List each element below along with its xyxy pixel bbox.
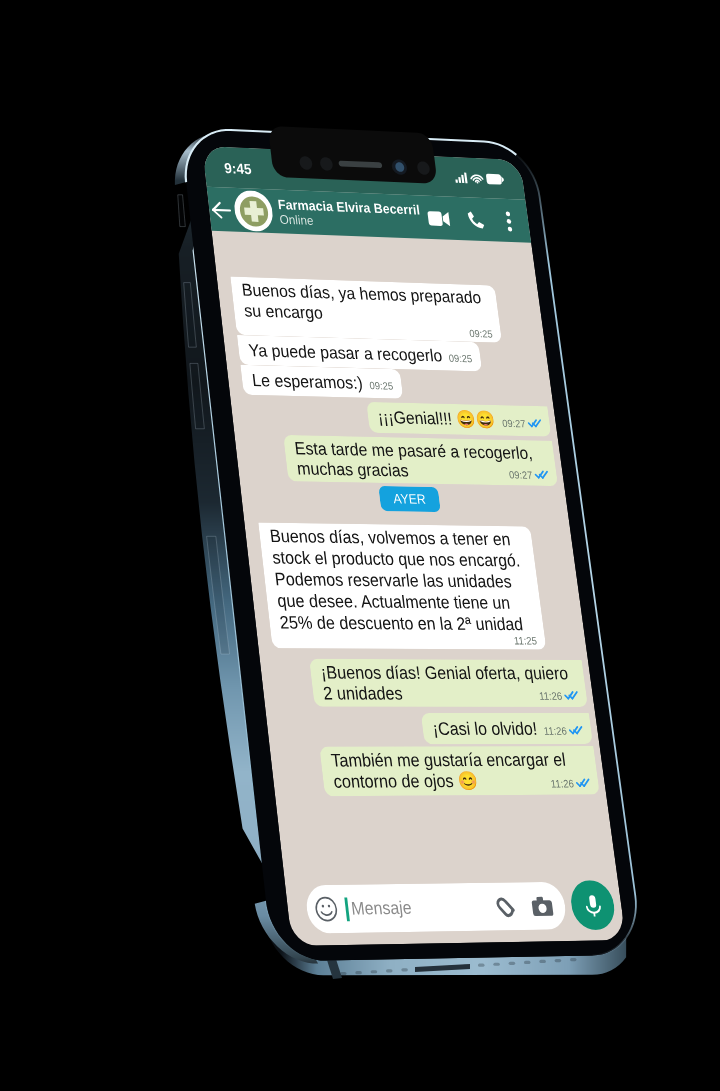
button[interactable]: Mensaje	[20, 724, 298, 769]
staticText: 09:25	[248, 203, 275, 215]
button[interactable]: Voice message	[305, 723, 352, 770]
button[interactable]: Buenos días, ya hemos preparado su encar…	[15, 133, 311, 192]
button[interactable]: ¡Casi lo olvido!	[167, 562, 353, 592]
button[interactable]: Attach	[221, 732, 243, 762]
staticText: ¡Buenos días! Genial oferta, quiero	[64, 513, 336, 533]
button[interactable]: Camera	[261, 732, 285, 762]
staticText: 09:25	[275, 177, 302, 189]
staticText: 09:27	[299, 320, 326, 332]
staticText: Ya puede pasar a recogerlo	[26, 197, 241, 217]
staticText: 11:26	[300, 539, 326, 551]
button[interactable]: Ya puede pasar a recogerlo	[15, 192, 284, 222]
staticText: ¡¡¡Genial!!! 😄😄	[160, 261, 292, 282]
button[interactable]: Le esperamos:)	[15, 222, 191, 252]
button[interactable]: ¡Buenos días! Genial oferta, quiero	[53, 510, 353, 556]
staticText: Buenos días, ya hemos preparado su encar…	[26, 136, 294, 177]
button[interactable]: Buenos días, volvemos a tener en stock e…	[15, 378, 315, 500]
staticText: Esta tarde me pasaré a recogerlo,	[64, 294, 329, 314]
button[interactable]: ¡¡¡Genial!!! 😄😄	[149, 256, 353, 287]
button[interactable]: Esta tarde me pasaré a recogerlo,	[53, 291, 353, 337]
staticText: También me gustaría encargar el	[64, 597, 320, 617]
staticText: Buenos días, volvemos a tener en stock e…	[26, 381, 299, 485]
staticText: muchas gracias	[64, 314, 187, 334]
staticText: 11:26	[300, 573, 326, 585]
button[interactable]: AYER	[151, 340, 217, 365]
staticText: contorno de ojos 😊	[64, 617, 221, 638]
staticText: 11:26	[300, 624, 326, 636]
staticText: AYER	[166, 345, 202, 360]
staticText: ¡Casi lo olvido!	[178, 567, 293, 587]
staticText: 09:27	[299, 268, 326, 280]
button[interactable]: También me gustaría encargar el	[53, 594, 353, 641]
